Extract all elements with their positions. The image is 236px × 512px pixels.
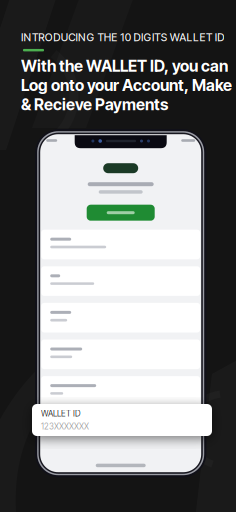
staticText: WALLET ID [41,408,81,418]
staticText: Log onto your Account, Make [21,76,232,95]
staticText: & Recieve Payments [21,95,168,114]
staticText: 123XXXXXXX [41,421,89,431]
button[interactable]: WALLET ID [32,404,212,436]
staticText: INTRODUCING THE 10 DIGITS WALLET ID [21,31,224,44]
staticText: With the WALLET ID, you can [21,56,228,76]
